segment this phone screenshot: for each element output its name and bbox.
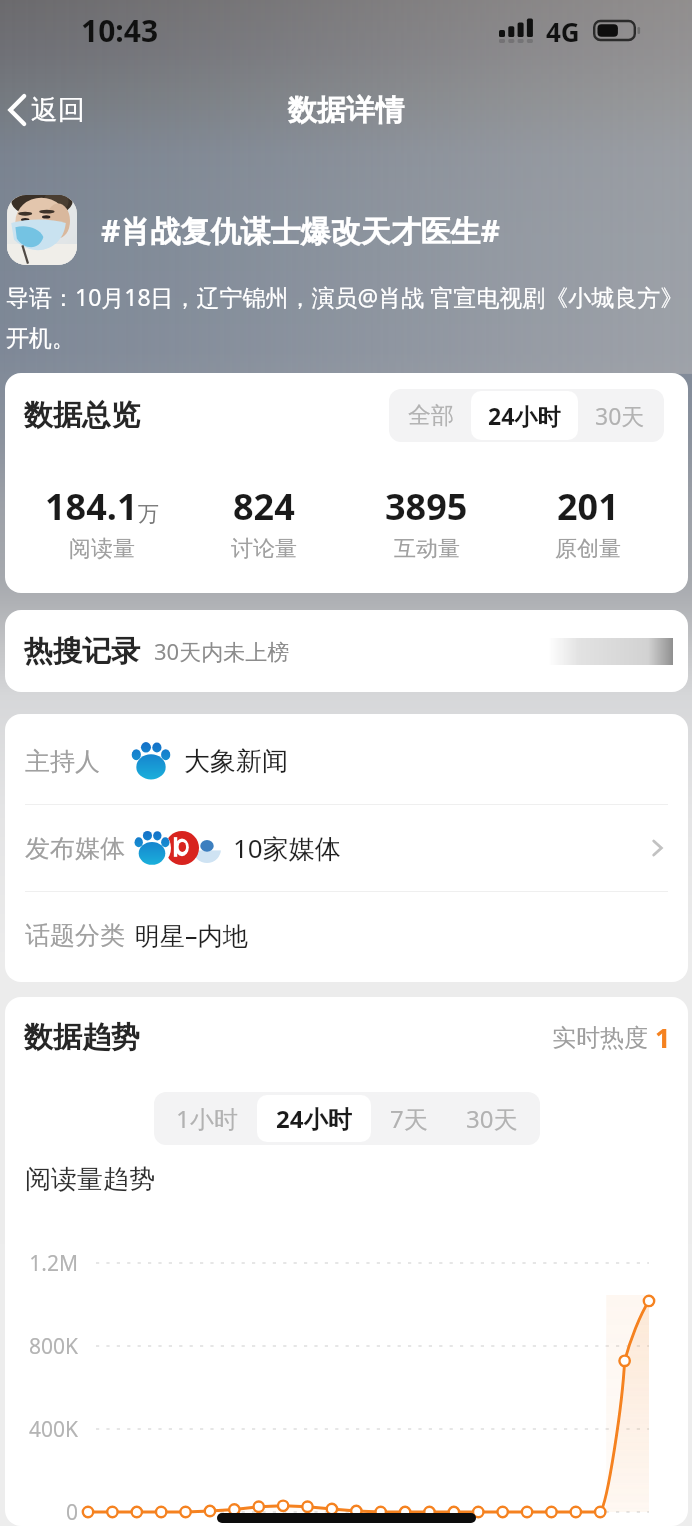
staticText: 1: [655, 1019, 671, 1056]
staticText: 返回: [31, 93, 85, 127]
button[interactable]: 201: [549, 480, 627, 565]
staticText: 讨论量: [231, 535, 297, 563]
staticText: 30天: [595, 400, 645, 431]
staticText: 数据总览: [24, 397, 140, 434]
staticText: 原创量: [555, 535, 621, 563]
button[interactable]: 1小时: [157, 1095, 257, 1142]
staticText: 万: [138, 501, 159, 527]
button[interactable]: 24小时: [471, 391, 578, 440]
staticText: 824: [233, 482, 295, 531]
staticText: 7天: [390, 1102, 428, 1135]
staticText: 24小时: [488, 400, 561, 431]
staticText: 话题分类: [25, 920, 125, 951]
staticText: 184.1: [45, 482, 138, 531]
staticText: 全部: [408, 401, 454, 430]
button[interactable]: 全部: [391, 392, 471, 439]
button[interactable]: 24小时: [257, 1095, 371, 1142]
staticText: 00:00: [374, 1521, 442, 1526]
staticText: 阅读量趋势: [25, 1163, 155, 1196]
button[interactable]: 184.1: [39, 480, 165, 565]
button[interactable]: 实时热度: [552, 1019, 671, 1056]
button[interactable]: 主持人: [25, 718, 668, 804]
staticText: 导语：10月18日，辽宁锦州，演员@肖战 官宣电视剧《小城良方》开机。: [6, 281, 692, 353]
staticText: 800K: [5, 1332, 78, 1361]
button[interactable]: 30天: [447, 1095, 537, 1142]
staticText: 实时热度: [552, 1023, 648, 1053]
staticText: 数据详情: [288, 92, 404, 129]
button[interactable]: 话题分类: [25, 892, 668, 978]
staticText: 发布媒体: [25, 833, 125, 864]
staticText: 10家媒体: [233, 830, 341, 866]
other: 查看媒体列表: [646, 837, 668, 859]
button[interactable]: 30天: [578, 391, 662, 440]
staticText: 3895: [385, 482, 468, 531]
staticText: 主持人: [25, 746, 100, 777]
staticText: 30天: [466, 1102, 518, 1135]
staticText: 互动量: [394, 535, 460, 563]
button[interactable]: 发布媒体: [25, 805, 668, 891]
staticText: 10:43: [81, 10, 159, 51]
button[interactable]: 7天: [371, 1095, 447, 1142]
staticText: 阅读量: [69, 535, 135, 563]
staticText: 热搜记录: [24, 633, 140, 670]
staticText: 数据趋势: [24, 1019, 140, 1056]
staticText: 明星–内地: [135, 918, 248, 952]
staticText: 400K: [5, 1415, 78, 1444]
button[interactable]: 3895: [379, 480, 474, 565]
staticText: 1小时: [176, 1102, 238, 1135]
staticText: 1.2M: [5, 1249, 78, 1278]
staticText: 10:00: [616, 1521, 684, 1526]
staticText: 24小时: [276, 1102, 352, 1135]
staticText: #肖战复仇谋士爆改天才医生#: [101, 210, 500, 251]
staticText: 大象新闻: [184, 745, 288, 778]
button[interactable]: 返回: [0, 83, 103, 137]
button[interactable]: 824: [225, 480, 303, 565]
staticText: 4G: [546, 14, 580, 49]
staticText: 30天内未上榜: [154, 636, 290, 666]
staticText: 19:00: [251, 1521, 319, 1526]
staticText: 0: [5, 1498, 78, 1526]
staticText: 201: [557, 482, 619, 531]
button[interactable]: 热搜记录: [5, 610, 688, 692]
